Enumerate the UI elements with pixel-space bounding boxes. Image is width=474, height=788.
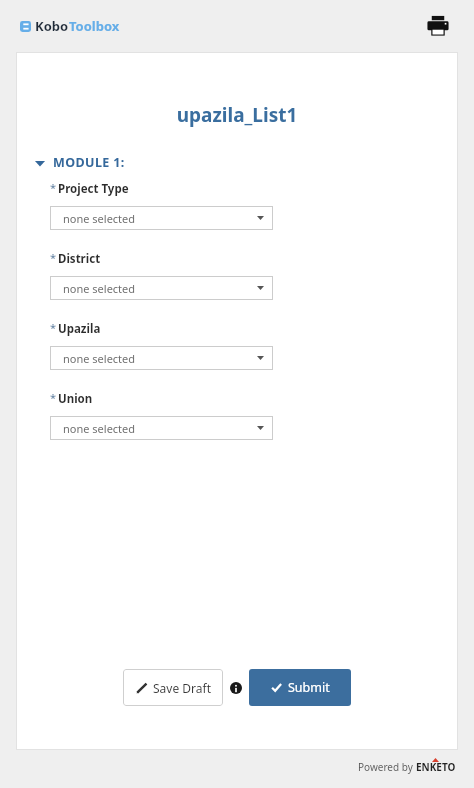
staticText: *	[50, 180, 57, 195]
staticText: Toolbox	[69, 17, 120, 35]
button[interactable]: none selected	[50, 206, 273, 230]
button[interactable]: none selected	[50, 276, 273, 300]
staticText: Project Type	[58, 181, 129, 197]
staticText: none selected	[63, 281, 136, 296]
staticText: *	[50, 250, 57, 265]
staticText: upazila_List1	[16, 102, 458, 128]
staticText: none selected	[63, 421, 136, 436]
button[interactable]: Save Draft	[123, 669, 223, 706]
button[interactable]: none selected	[50, 416, 273, 440]
button[interactable]: Submit	[249, 669, 351, 706]
staticText: District	[58, 251, 101, 267]
staticText: Union	[58, 391, 93, 407]
staticText: ENKETO	[416, 760, 456, 774]
button[interactable]: Information	[229, 681, 243, 695]
staticText: MODULE 1:	[53, 154, 125, 171]
staticText: *	[50, 320, 57, 335]
staticText: Powered by	[358, 760, 416, 774]
button[interactable]: MODULE 1:	[34, 154, 125, 171]
staticText: Upazila	[58, 321, 101, 337]
staticText: *	[50, 390, 57, 405]
staticText: Submit	[288, 679, 330, 696]
staticText: Kobo	[35, 17, 69, 35]
staticText: none selected	[63, 351, 136, 366]
staticText: none selected	[63, 211, 136, 226]
staticText: Save Draft	[153, 680, 211, 696]
button[interactable]: none selected	[50, 346, 273, 370]
button[interactable]: Print	[422, 10, 454, 42]
